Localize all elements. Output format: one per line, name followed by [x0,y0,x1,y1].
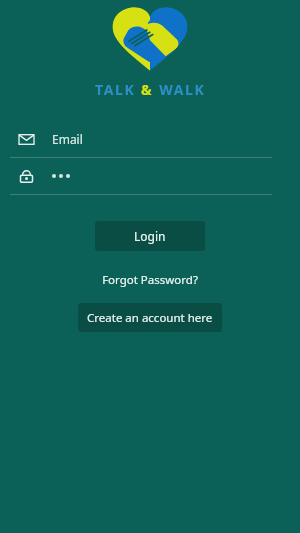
button[interactable]: Password [0,158,300,194]
other: Password [18,168,34,184]
button[interactable]: Create an account here [78,303,222,332]
staticText: & [141,80,154,99]
staticText: Email [52,131,83,147]
button[interactable]: Forgot Password? [96,269,204,291]
other: Email [18,131,34,147]
staticText: WALK [154,80,206,99]
staticText: TALK [95,80,141,99]
button[interactable]: Login [95,221,205,251]
staticText: Forgot Password? [102,272,198,288]
staticText: Create an account here [87,310,213,326]
button[interactable]: Email [0,121,300,157]
staticText: Login [134,228,166,244]
